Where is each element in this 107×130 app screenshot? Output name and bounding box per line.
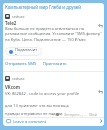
staticText: 1 Экспресс..., ... Мой: [60, 112, 97, 117]
staticText: VK: 862842 - code to access your profile: [5, 91, 103, 96]
button[interactable]: Компьютерный мир Глеба и друзей: [3, 3, 104, 11]
staticText: Tele2: [5, 20, 17, 26]
button[interactable]: Отправить SMS: [5, 61, 37, 67]
staticText: Компьютерный мир Глеба и друзей: [5, 4, 81, 10]
button[interactable]: Пригласить: [43, 61, 67, 67]
staticText: сейчас: [12, 14, 25, 19]
button[interactable]: 1 Экспресс..., ... Мой: [56, 112, 97, 117]
staticText: Leave a comment: [13, 119, 47, 124]
button[interactable]: Leave a comment: [6, 119, 47, 124]
staticText: для 13 признают что вы помощь: [5, 103, 103, 108]
staticText: Вам больше не придётся отвлекаться на ре…: [5, 26, 103, 43]
button[interactable]: Send: [98, 118, 104, 124]
staticText: VKcom: [5, 84, 21, 90]
staticText: сейчас: [12, 76, 25, 81]
staticText: Подключить: [15, 47, 39, 56]
staticText: правды отправили не надели: [5, 111, 103, 116]
button[interactable]: Подключить: [5, 47, 42, 56]
